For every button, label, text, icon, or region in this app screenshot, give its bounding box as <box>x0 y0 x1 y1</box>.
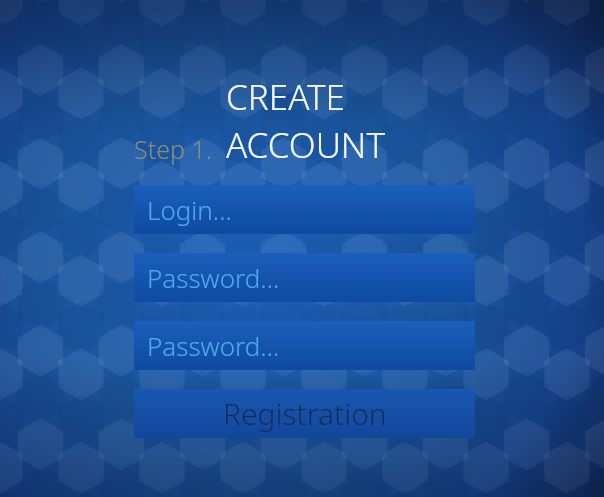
button[interactable]: Password... <box>134 321 475 370</box>
staticText: Password... <box>147 328 280 363</box>
staticText: Step 1. <box>134 132 212 166</box>
staticText: Login... <box>147 192 232 227</box>
staticText: Password... <box>147 260 280 295</box>
button[interactable]: Login... <box>134 185 475 234</box>
staticText: CREATE ACCOUNT <box>226 73 475 169</box>
button[interactable]: Registration <box>134 389 475 438</box>
staticText: Registration <box>223 393 387 434</box>
button[interactable]: Password... <box>134 253 475 302</box>
